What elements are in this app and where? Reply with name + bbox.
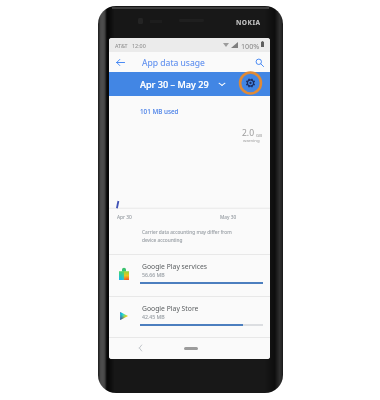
button[interactable]: Back (113, 55, 127, 69)
button[interactable]: Apr 30 – May 29 (140, 72, 226, 96)
staticText: 2.0 (242, 127, 255, 139)
button[interactable]: Back (131, 340, 149, 356)
staticText: 100% (241, 41, 260, 51)
button[interactable]: Google Play Store (109, 297, 270, 338)
staticText: 101 MB used (140, 107, 179, 116)
staticText: 56.66 MB (142, 271, 165, 278)
staticText: App data usage (142, 57, 205, 69)
button[interactable]: Google Play services (109, 255, 270, 296)
staticText: NOKIA (236, 18, 261, 27)
staticText: Google Play services (142, 262, 208, 271)
staticText: 42.45 MB (142, 313, 165, 320)
staticText: warning (243, 137, 260, 143)
staticText: Google Play Store (142, 304, 199, 313)
staticText: Apr 30 (117, 214, 132, 221)
button[interactable]: Search (252, 55, 266, 69)
staticText: Apr 30 – May 29 (140, 78, 209, 90)
staticText: AT&T (115, 42, 128, 49)
staticText: 12:00 (132, 42, 146, 49)
staticText: GB (256, 132, 262, 138)
staticText: Carrier data accounting may differ from … (142, 229, 247, 243)
button[interactable]: Home (177, 340, 204, 356)
staticText: May 30 (220, 214, 237, 221)
button[interactable]: Settings (238, 71, 263, 95)
